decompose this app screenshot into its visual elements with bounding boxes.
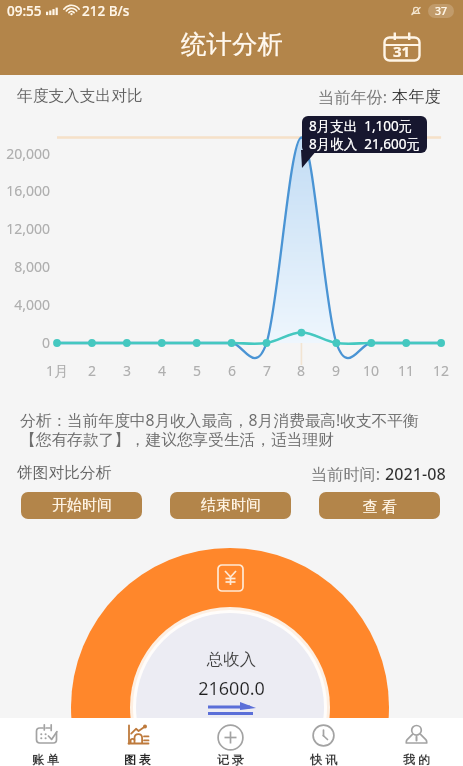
staticText: 31 (393, 41, 411, 61)
button[interactable]: Calendar (380, 28, 424, 64)
staticText: 4 (142, 361, 182, 380)
staticText: 8月收入 21,600元 (309, 135, 420, 153)
staticText: 8月支出 1,100元 (309, 117, 413, 135)
staticText: 37 (435, 4, 448, 18)
staticText: 记 录 (217, 751, 245, 766)
staticText: 7 (247, 361, 287, 380)
staticText: 结束时间 (201, 496, 261, 515)
staticText: 16,000 (0, 181, 50, 200)
staticText: 开始时间 (52, 496, 112, 515)
staticText: 12 (421, 361, 461, 380)
staticText: 3 (107, 361, 147, 380)
staticText: 【您有存款了】，建议您享受生活，适当理财 (20, 430, 334, 450)
staticText: 4,000 (0, 295, 50, 314)
staticText: 6 (212, 361, 252, 380)
staticText: 当前时间: (311, 463, 385, 485)
staticText: 饼图对比分析 (17, 463, 112, 483)
staticText: 本年度 (392, 86, 441, 106)
button[interactable]: 图 表 (92, 718, 184, 766)
button[interactable]: 账 单 (0, 718, 92, 766)
staticText: 当前年份: (318, 86, 392, 108)
staticText: 212 B/s (82, 2, 130, 20)
staticText: 09:55 (7, 2, 42, 20)
staticText: 0 (0, 333, 50, 352)
staticText: 查 看 (363, 496, 397, 516)
button[interactable]: 结束时间 (170, 492, 291, 519)
staticText: 账 单 (32, 751, 60, 766)
button[interactable]: 查 看 (319, 492, 440, 519)
staticText: 2 (72, 361, 112, 380)
button[interactable]: 开始时间 (21, 492, 142, 519)
staticText: 分析：当前年度中8月收入最高，8月消费最高!收支不平衡 (20, 409, 419, 430)
button[interactable]: 我 的 (370, 718, 463, 766)
button[interactable]: 记 录 (184, 718, 277, 766)
staticText: 11 (386, 361, 426, 380)
staticText: 快 讯 (310, 751, 338, 766)
button[interactable]: 快 讯 (277, 718, 370, 766)
staticText: 2021-08 (385, 463, 446, 485)
staticText: 9 (316, 361, 356, 380)
staticText: 我 的 (403, 751, 431, 766)
staticText: 8 (281, 361, 321, 380)
staticText: 12,000 (0, 219, 50, 238)
staticText: 21600.0 (0, 676, 463, 701)
staticText: 10 (351, 361, 391, 380)
staticText: 1月 (37, 361, 77, 380)
staticText: 图 表 (124, 751, 152, 766)
staticText: 统计分析 (181, 28, 283, 60)
staticText: 5 (177, 361, 217, 380)
staticText: 8,000 (0, 257, 50, 276)
staticText: 20,000 (0, 144, 50, 163)
staticText: 年度支入支出对比 (17, 86, 143, 106)
staticText: 总收入 (0, 649, 463, 670)
